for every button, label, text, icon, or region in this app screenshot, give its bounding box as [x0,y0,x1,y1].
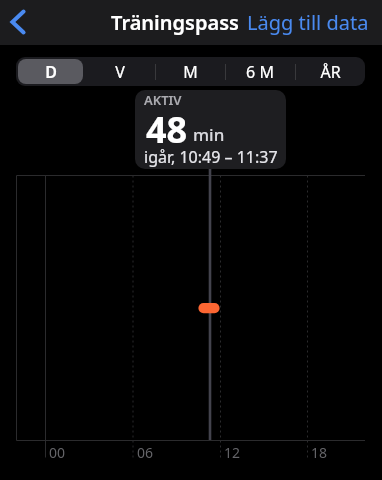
staticText: Lägg till data [247,9,369,36]
staticText: 48 [146,105,188,154]
staticText: 06 [137,443,154,462]
staticText: ÅR [320,61,341,83]
staticText: 6 M [246,61,274,83]
button[interactable]: 6 M [225,57,295,86]
button[interactable]: Lägg till data [239,0,382,45]
button[interactable]: D [16,57,85,86]
button[interactable]: V [85,57,155,86]
staticText: Träningspass [111,9,239,36]
staticText: 00 [49,443,66,462]
button[interactable]: M [155,57,225,86]
staticText: M [183,61,198,83]
staticText: min [193,123,225,146]
staticText: AKTIV [144,91,182,109]
button[interactable]: ÅR [295,57,365,86]
button[interactable]: Back [0,0,38,45]
staticText: 12 [224,443,241,462]
staticText: igår, 10:49 – 11:37 [144,146,278,168]
staticText: D [45,61,57,83]
staticText: V [115,61,125,83]
staticText: 18 [311,443,328,462]
